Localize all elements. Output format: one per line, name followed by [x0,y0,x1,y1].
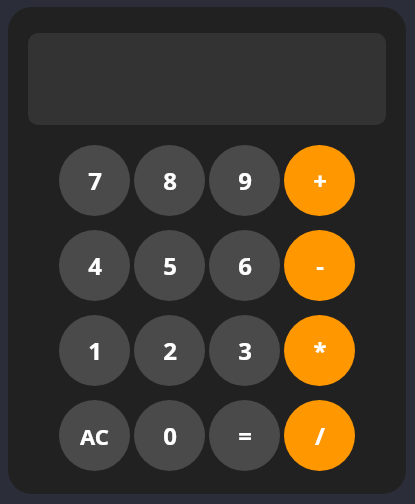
staticText: 5 [163,249,177,282]
button[interactable]: Plus [284,145,355,216]
staticText: * [313,334,327,367]
staticText: 0 [163,419,177,452]
button[interactable]: 1 [59,315,130,386]
staticText: 3 [238,334,252,367]
button[interactable]: 5 [134,230,205,301]
staticText: = [238,419,252,452]
staticText: 1 [88,334,102,367]
button[interactable]: Minus [284,230,355,301]
staticText: 8 [163,164,177,197]
button[interactable]: 4 [59,230,130,301]
staticText: - [316,249,324,282]
button[interactable]: 7 [59,145,130,216]
button[interactable]: 9 [209,145,280,216]
staticText: 9 [238,164,252,197]
button[interactable]: 8 [134,145,205,216]
button[interactable]: 3 [209,315,280,386]
button[interactable]: Divide [284,400,355,471]
staticText: / [315,419,325,452]
button[interactable]: Equals [209,400,280,471]
button[interactable]: 0 [134,400,205,471]
staticText: 6 [238,249,252,282]
staticText: 4 [88,249,102,282]
staticText: AC [80,421,109,451]
button[interactable]: All clear [59,400,130,471]
button[interactable]: 2 [134,315,205,386]
staticText: + [313,164,327,197]
staticText: 2 [163,334,177,367]
staticText: 7 [88,164,102,197]
button[interactable]: 6 [209,230,280,301]
button[interactable]: Multiply [284,315,355,386]
